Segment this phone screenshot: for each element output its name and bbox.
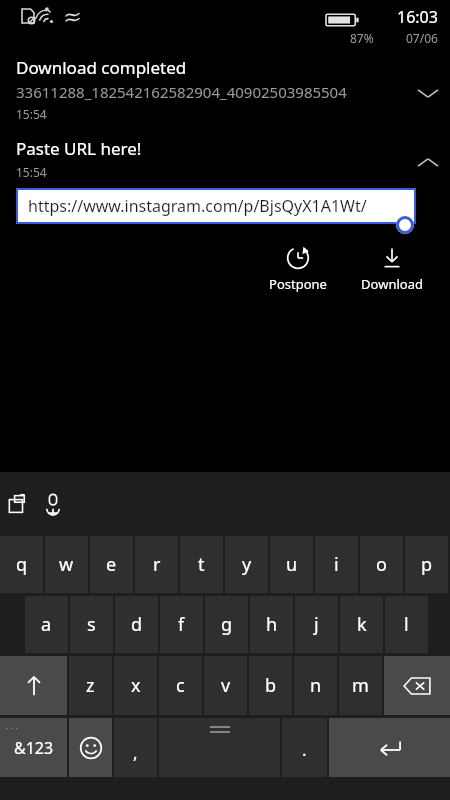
button[interactable]: Postpone <box>258 242 338 297</box>
staticText: u <box>286 552 298 577</box>
staticText: j <box>314 612 319 637</box>
button[interactable]: o <box>360 536 403 593</box>
button[interactable]: e <box>90 536 133 593</box>
button[interactable]: v <box>204 656 247 715</box>
staticText: p <box>421 552 433 577</box>
button[interactable]: l <box>385 596 428 653</box>
staticText: · · · <box>6 722 18 734</box>
button[interactable]: h <box>250 596 293 653</box>
button[interactable]: j <box>295 596 338 653</box>
staticText: l <box>404 612 409 637</box>
button[interactable]: q <box>0 536 43 593</box>
staticText: y <box>242 552 252 577</box>
staticText: w <box>59 552 74 577</box>
button[interactable]: Emoji <box>69 718 112 777</box>
button[interactable]: Voice input <box>32 481 74 527</box>
staticText: f <box>178 612 185 637</box>
staticText: c <box>176 673 185 698</box>
button[interactable]: Clipboard <box>0 481 42 527</box>
button[interactable]: k <box>340 596 383 653</box>
button[interactable]: https://www.instagram.com/p/BjsQyX1A1Wt/ <box>18 190 414 222</box>
staticText: t <box>198 552 205 577</box>
button[interactable]: b <box>249 656 292 715</box>
button[interactable]: Shift <box>0 656 67 715</box>
staticText: Postpone <box>269 275 327 293</box>
staticText: 15:54 <box>16 164 47 180</box>
staticText: x <box>131 673 141 698</box>
button[interactable]: r <box>135 536 178 593</box>
staticText: s <box>87 612 96 637</box>
button[interactable]: g <box>205 596 248 653</box>
button[interactable]: Space <box>159 718 280 777</box>
staticText: a <box>41 612 52 637</box>
staticText: 87% <box>350 30 374 46</box>
staticText: 15:54 <box>16 106 47 122</box>
button[interactable]: Backspace <box>384 656 450 715</box>
button[interactable]: u <box>270 536 313 593</box>
button[interactable]: Download completed <box>0 48 450 131</box>
staticText: . <box>302 738 307 761</box>
staticText: Download <box>361 275 423 293</box>
staticText: n <box>310 673 322 698</box>
staticText: Download completed <box>16 56 187 79</box>
button[interactable]: x <box>114 656 157 715</box>
staticText: e <box>106 552 117 577</box>
button[interactable]: z <box>69 656 112 715</box>
staticText: 07/06 <box>406 30 438 46</box>
button[interactable]: Collapse notification <box>406 147 450 177</box>
staticText: g <box>221 612 233 637</box>
button[interactable]: d <box>115 596 158 653</box>
staticText: b <box>265 673 277 698</box>
button[interactable]: w <box>45 536 88 593</box>
staticText: m <box>352 673 369 698</box>
staticText: h <box>266 612 278 637</box>
button[interactable]: y <box>225 536 268 593</box>
staticText: 16:03 <box>397 6 438 28</box>
staticText: r <box>153 552 161 577</box>
staticText: Paste URL here! <box>16 137 142 160</box>
button[interactable]: . <box>282 718 327 777</box>
staticText: i <box>334 552 339 577</box>
button[interactable]: Expand notification <box>406 78 450 108</box>
button[interactable]: n <box>294 656 337 715</box>
staticText: https://www.instagram.com/p/BjsQyX1A1Wt/ <box>28 195 367 217</box>
button[interactable]: f <box>160 596 203 653</box>
staticText: o <box>376 552 387 577</box>
staticText: v <box>221 673 231 698</box>
staticText: z <box>86 673 95 698</box>
staticText: &123 <box>14 737 54 759</box>
button[interactable]: p <box>405 536 448 593</box>
button[interactable]: Paste URL here! <box>0 131 450 188</box>
button[interactable]: · · · <box>0 718 67 777</box>
button[interactable]: a <box>25 596 68 653</box>
staticText: , <box>133 741 138 764</box>
button[interactable]: c <box>159 656 202 715</box>
staticText: q <box>16 552 28 577</box>
button[interactable]: t <box>180 536 223 593</box>
button[interactable]: Download <box>352 242 432 297</box>
staticText: k <box>357 612 367 637</box>
button[interactable]: , <box>114 718 157 777</box>
button[interactable]: Enter <box>329 718 450 777</box>
staticText: 33611288_182542162582904_40902503985504 <box>16 82 347 102</box>
button[interactable]: m <box>339 656 382 715</box>
button[interactable]: s <box>70 596 113 653</box>
staticText: d <box>131 612 143 637</box>
button[interactable]: i <box>315 536 358 593</box>
